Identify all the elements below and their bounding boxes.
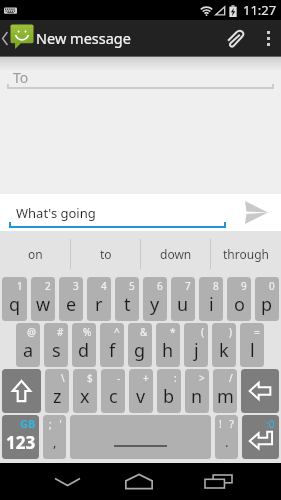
staticText: e xyxy=(66,292,77,317)
staticText: :0 xyxy=(266,417,275,431)
staticText: through xyxy=(223,246,269,262)
staticText: w xyxy=(36,292,51,317)
button[interactable]: Backspace xyxy=(241,369,279,413)
staticText: y xyxy=(150,292,160,317)
staticText: 9 xyxy=(241,279,247,293)
button[interactable]: 123 xyxy=(2,415,39,459)
button[interactable]: n xyxy=(185,369,209,413)
button[interactable]: t xyxy=(115,277,139,321)
button[interactable]: down xyxy=(141,231,211,276)
staticText: a xyxy=(23,338,34,363)
staticText: 3 xyxy=(73,279,79,293)
staticText: = xyxy=(254,325,260,339)
staticText: GB xyxy=(20,416,36,431)
button[interactable]: v xyxy=(129,369,153,413)
staticText: ! ? xyxy=(219,417,234,431)
button[interactable]: through xyxy=(211,231,281,276)
staticText: r xyxy=(95,292,103,317)
button[interactable]: o xyxy=(227,277,251,321)
staticText: c xyxy=(109,384,118,409)
button[interactable]: x xyxy=(73,369,97,413)
staticText: ^ xyxy=(114,325,120,339)
staticText: What's going xyxy=(16,204,96,222)
button[interactable]: , xyxy=(43,415,66,459)
staticText: t xyxy=(124,292,131,317)
button[interactable]: q xyxy=(2,277,27,321)
staticText: to xyxy=(100,246,112,262)
button[interactable]: e xyxy=(59,277,83,321)
button[interactable]: p xyxy=(255,277,279,321)
button[interactable]: l xyxy=(240,323,264,367)
button[interactable]: Back xyxy=(44,463,90,500)
button[interactable]: f xyxy=(100,323,124,367)
button[interactable]: to xyxy=(71,231,141,276)
staticText: i xyxy=(209,292,214,317)
button[interactable]: u xyxy=(171,277,195,321)
staticText: g xyxy=(134,338,146,363)
button[interactable]: b xyxy=(157,369,181,413)
button[interactable]: . xyxy=(215,415,238,459)
staticText: - xyxy=(117,371,121,385)
staticText: b xyxy=(163,384,175,409)
staticText: To xyxy=(13,68,29,87)
staticText: $ xyxy=(87,371,93,385)
staticText: 1 xyxy=(17,279,23,293)
staticText: New message xyxy=(36,28,131,48)
staticText: l xyxy=(250,338,255,363)
staticText: 123 xyxy=(6,431,36,454)
button[interactable]: Recent apps xyxy=(195,463,241,500)
staticText: q xyxy=(9,292,21,317)
button[interactable]: z xyxy=(45,369,69,413)
staticText: @ xyxy=(27,325,36,339)
button[interactable]: i xyxy=(199,277,223,321)
staticText: * xyxy=(170,325,176,339)
button[interactable]: Space xyxy=(70,415,211,459)
staticText: n xyxy=(191,384,203,409)
button[interactable]: k xyxy=(212,323,236,367)
button[interactable]: Attach xyxy=(213,20,255,56)
button[interactable]: More options xyxy=(255,20,281,56)
staticText: / xyxy=(229,371,233,385)
staticText: : xyxy=(174,371,177,385)
staticText: 4 xyxy=(101,279,107,293)
button[interactable]: Shift xyxy=(2,369,41,413)
staticText: s xyxy=(52,338,61,363)
staticText: on xyxy=(28,246,43,262)
staticText: > xyxy=(199,371,205,385)
button[interactable]: m xyxy=(213,369,237,413)
staticText: 5 xyxy=(129,279,135,293)
staticText: p xyxy=(261,292,273,317)
staticText: f xyxy=(109,338,116,363)
button[interactable]: h xyxy=(156,323,180,367)
button[interactable]: c xyxy=(101,369,125,413)
staticText: m xyxy=(217,384,234,409)
staticText: ) xyxy=(229,325,232,339)
button[interactable]: on xyxy=(0,231,71,276)
staticText: 11:27 xyxy=(243,1,277,19)
button[interactable]: a xyxy=(16,323,40,367)
staticText: u xyxy=(177,292,189,317)
button[interactable]: Send xyxy=(233,194,281,231)
button[interactable]: s xyxy=(44,323,68,367)
staticText: \ xyxy=(61,371,65,385)
button[interactable]: Home xyxy=(116,463,162,500)
button[interactable]: w xyxy=(31,277,55,321)
staticText: 7 xyxy=(185,279,191,293)
button[interactable]: g xyxy=(128,323,152,367)
staticText: 6 xyxy=(157,279,163,293)
staticText: & xyxy=(140,325,148,339)
staticText: z xyxy=(53,384,62,409)
button[interactable]: Enter xyxy=(242,415,279,459)
button[interactable]: y xyxy=(143,277,167,321)
staticText: v xyxy=(136,384,146,409)
staticText: . xyxy=(225,433,229,451)
staticText: # xyxy=(57,325,64,339)
button[interactable]: New message xyxy=(0,20,134,56)
staticText: d xyxy=(78,338,90,363)
staticText: x xyxy=(80,384,90,409)
button[interactable]: d xyxy=(72,323,96,367)
button[interactable]: r xyxy=(87,277,111,321)
staticText: % xyxy=(83,325,92,339)
staticText: 2 xyxy=(45,279,51,293)
button[interactable]: j xyxy=(184,323,208,367)
